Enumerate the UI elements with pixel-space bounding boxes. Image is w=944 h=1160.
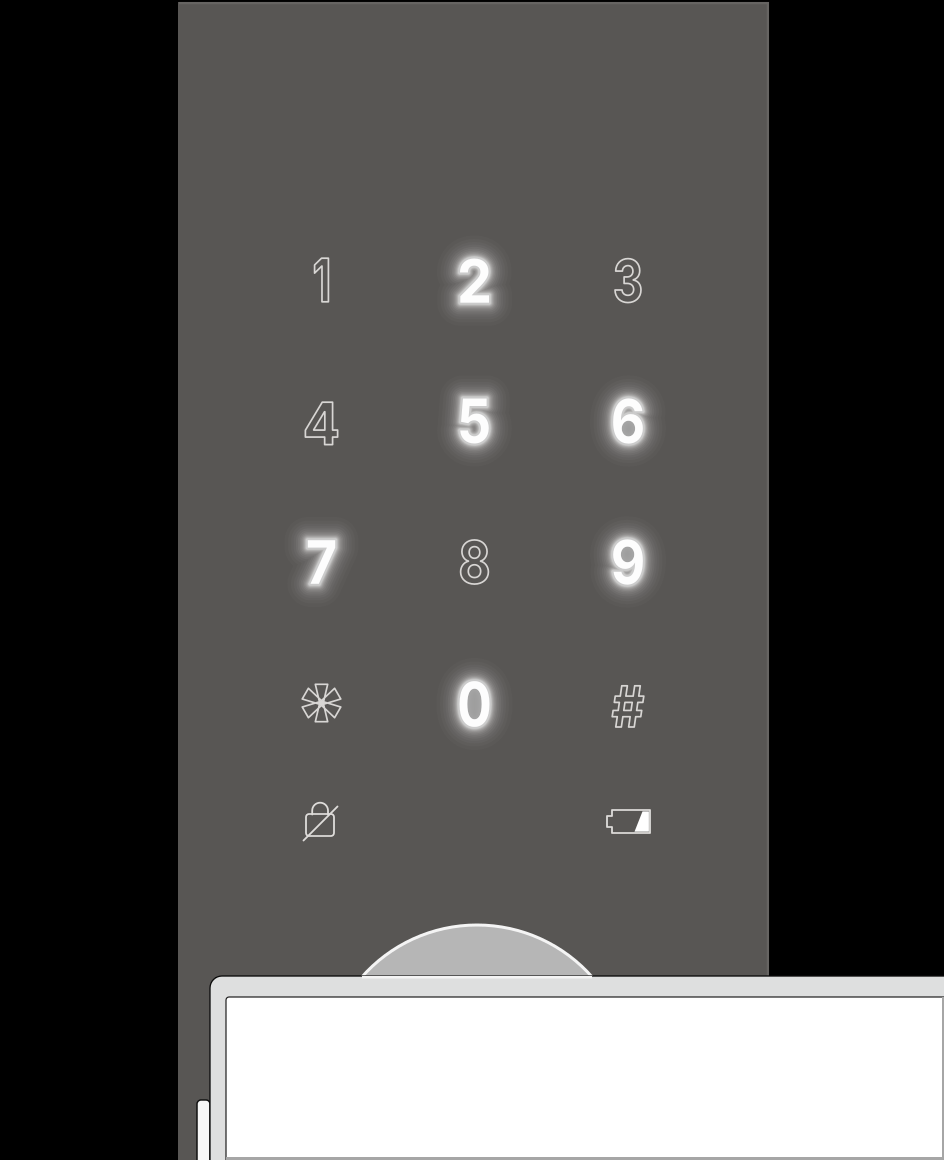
button[interactable]: [0, 0, 944, 1160]
button[interactable]: [0, 0, 944, 1160]
button[interactable]: [0, 0, 944, 1160]
button[interactable]: [0, 0, 944, 1160]
button[interactable]: [0, 0, 944, 1160]
button[interactable]: Lock released: [0, 0, 944, 1160]
button[interactable]: [0, 0, 944, 1160]
button[interactable]: [0, 0, 944, 1160]
button[interactable]: [0, 0, 944, 1160]
button[interactable]: [0, 0, 944, 1160]
button[interactable]: Battery level: [0, 0, 944, 1160]
button[interactable]: [0, 0, 944, 1160]
button[interactable]: [0, 0, 944, 1160]
button[interactable]: [0, 0, 944, 1160]
